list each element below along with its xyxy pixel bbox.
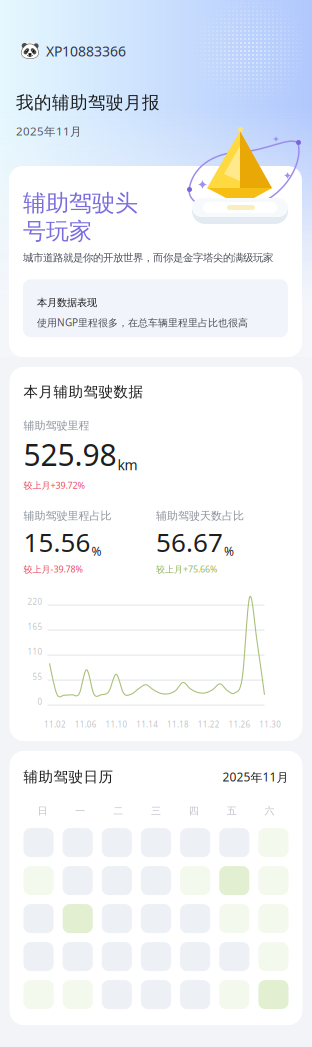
staticText: 15.56 <box>23 525 90 559</box>
staticText: 165 <box>27 621 42 632</box>
staticText: 四 <box>189 805 199 817</box>
staticText: 辅助驾驶日历 <box>23 768 113 786</box>
staticText: XP10883366 <box>46 42 126 60</box>
staticText: 使用NGP里程很多，在总车辆里程里占比也很高 <box>37 316 248 329</box>
staticText: 本月数据表现 <box>37 296 97 309</box>
staticText: 我的辅助驾驶月报 <box>16 92 160 113</box>
staticText: 城市道路就是你的开放世界，而你是金字塔尖的满级玩家 <box>23 251 273 264</box>
staticText: 525.98 <box>23 434 116 474</box>
staticText: 11.06 <box>75 719 97 730</box>
staticText: % <box>224 543 234 559</box>
staticText: 辅助驾驶头 <box>23 189 138 217</box>
staticText: 11.26 <box>228 719 250 730</box>
staticText: 55 <box>32 671 42 682</box>
staticText: 较上月+39.72% <box>23 479 84 491</box>
staticText: 辅助驾驶里程占比 <box>23 509 111 523</box>
staticText: km <box>117 456 137 474</box>
staticText: 110 <box>27 646 42 657</box>
staticText: 11.10 <box>105 719 127 730</box>
staticText: 号玩家 <box>23 217 92 246</box>
staticText: 日 <box>37 805 47 817</box>
staticText: 11.02 <box>44 719 66 730</box>
staticText: 一 <box>75 805 85 817</box>
staticText: 11.14 <box>136 719 158 730</box>
staticText: 0 <box>37 696 42 707</box>
staticText: 2025年11月 <box>222 769 288 785</box>
staticText: 二 <box>113 805 123 817</box>
staticText: 五 <box>227 805 237 817</box>
staticText: 56.67 <box>156 525 223 559</box>
staticText: 11.18 <box>167 719 189 730</box>
staticText: 辅助驾驶天数占比 <box>156 509 244 523</box>
staticText: 11.30 <box>259 719 281 730</box>
staticText: 三 <box>151 805 161 817</box>
staticText: 较上月+75.66% <box>156 563 217 575</box>
staticText: 220 <box>27 596 42 607</box>
staticText: 辅助驾驶里程 <box>23 419 89 432</box>
staticText: 六 <box>265 805 275 817</box>
staticText: % <box>91 543 101 559</box>
staticText: 11.22 <box>198 719 220 730</box>
staticText: 🐼 <box>19 42 39 60</box>
staticText: 本月辅助驾驶数据 <box>23 383 143 401</box>
staticText: 2025年11月 <box>16 123 82 139</box>
staticText: 较上月-39.78% <box>23 563 82 575</box>
